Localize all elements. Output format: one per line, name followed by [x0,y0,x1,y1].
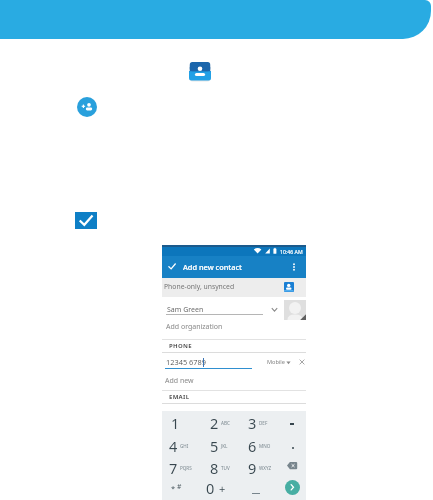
staticText: 8 [210,458,219,478]
staticText: Sam Green [167,305,204,315]
button[interactable] [168,263,176,270]
staticText: PHONE [169,342,192,350]
staticText: GHI [180,443,189,449]
staticText: ABC [221,420,230,426]
button[interactable] [285,480,300,495]
button[interactable]: 2 [210,413,230,433]
staticText: 7 [169,458,178,478]
button[interactable] [75,212,97,229]
staticText: # [177,482,182,491]
staticText: JKL [221,443,228,449]
staticText: DEF [259,420,268,426]
button[interactable]: 4 [169,436,189,456]
button[interactable] [203,475,229,494]
staticText: 5 [210,436,219,456]
button[interactable] [291,261,297,273]
staticText: 4 [169,436,178,456]
button[interactable]: 3 [248,413,268,433]
staticText: TUV [221,465,230,471]
button[interactable] [299,359,305,365]
staticText: Add new contact [183,262,242,272]
staticText: 6 [248,436,257,456]
button[interactable]: 1 [171,413,180,433]
button[interactable]: 6 [248,436,271,456]
button[interactable] [77,97,97,117]
staticText: * [171,483,176,493]
button[interactable]: 8 [210,458,230,478]
staticText: 0 [206,478,215,498]
staticText: Add new [165,376,194,386]
button[interactable] [287,462,297,469]
button[interactable]: 5 [210,436,228,456]
staticText: PQRS [180,465,192,471]
staticText: 2 [210,413,219,433]
staticText: Mobile [267,358,285,366]
staticText: 9 [248,458,257,478]
staticText: Phone-only, unsynced [164,282,235,291]
staticText: Add organization [166,322,223,332]
staticText: 3 [248,413,257,433]
staticText: MNO [259,443,271,449]
button[interactable] [167,477,189,494]
staticText: WXYZ [259,465,272,471]
button[interactable] [265,356,293,367]
button[interactable]: 7 [169,458,192,478]
staticText: 10:46 AM [280,248,303,255]
staticText: 12345 6789 [166,357,206,367]
staticText: + [219,481,226,496]
button[interactable] [284,282,294,292]
button[interactable] [284,300,306,320]
button[interactable]: 9 [248,458,272,478]
staticText: EMAIL [169,393,190,401]
staticText: 1 [171,413,180,433]
button[interactable] [162,256,306,279]
